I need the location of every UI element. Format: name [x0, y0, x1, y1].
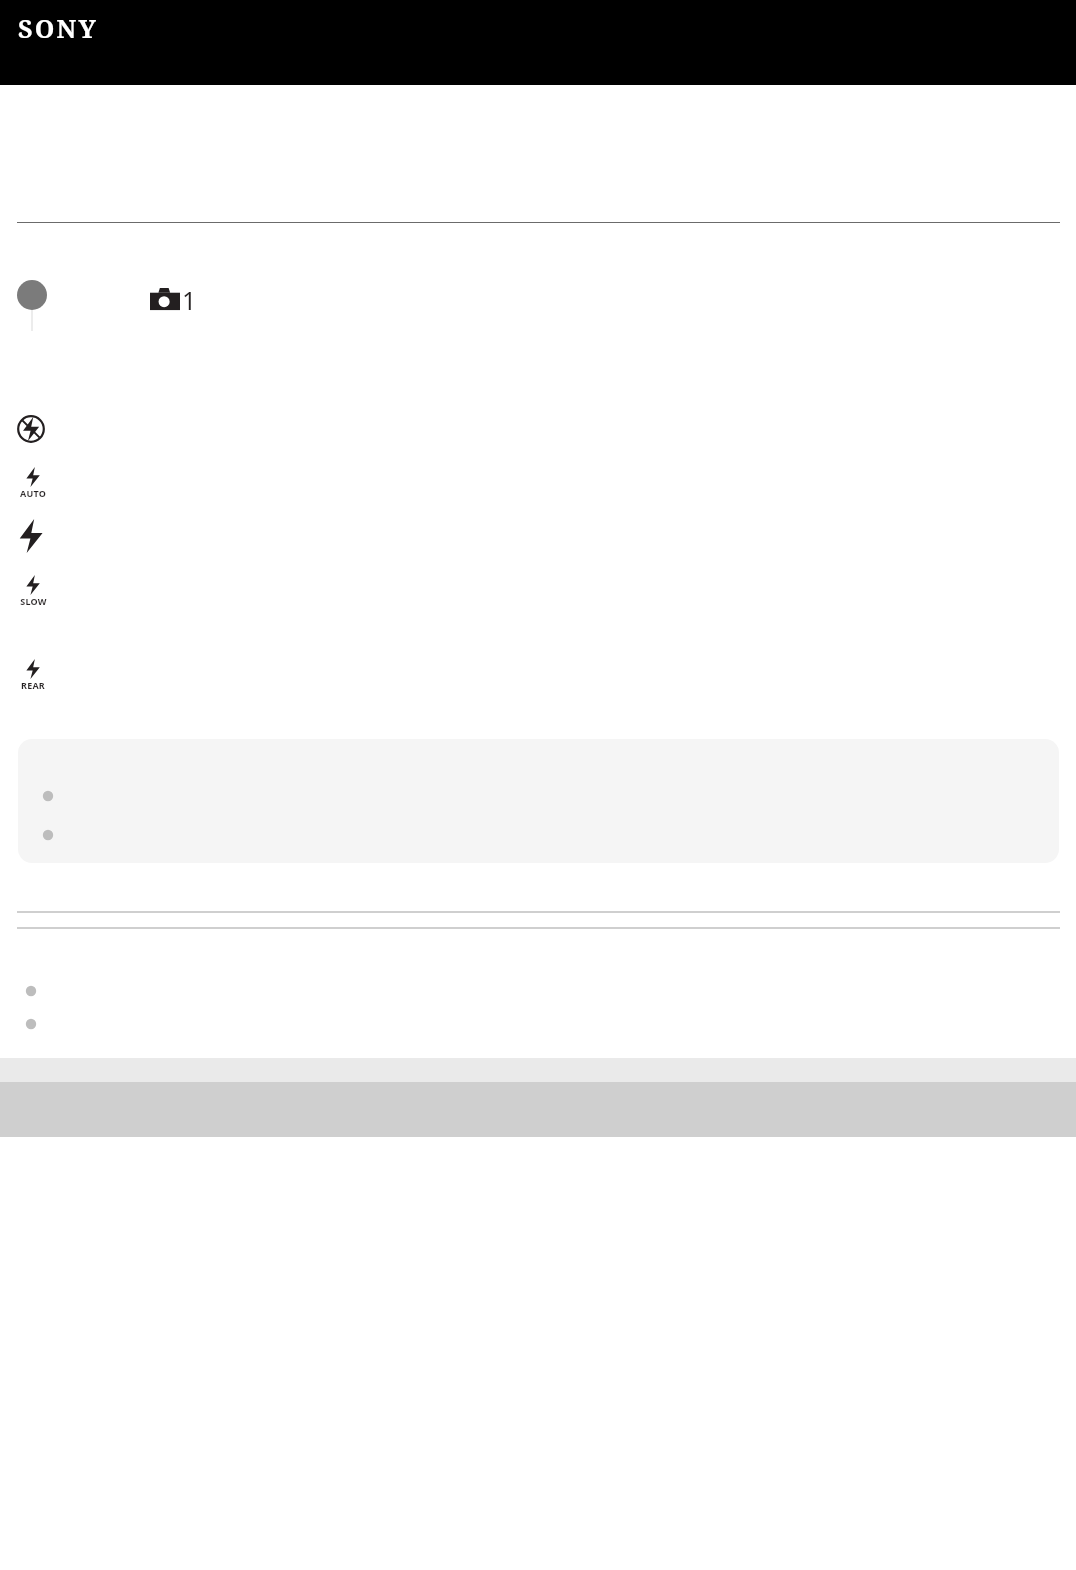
staticText: 1 [182, 283, 197, 317]
button[interactable]: SONY [14, 9, 102, 47]
staticText: REAR [21, 679, 45, 691]
staticText: SLOW [20, 595, 47, 607]
other: Camera [150, 286, 180, 314]
other: Flash off [16, 414, 46, 444]
button[interactable]: AUTO [16, 467, 1076, 499]
button[interactable]: SLOW [16, 575, 1076, 607]
staticText: AUTO [20, 487, 46, 499]
button[interactable]: REAR [16, 659, 1076, 691]
other: Flash on [16, 519, 46, 553]
staticText: SONY [18, 11, 98, 45]
button[interactable]: Flash off [16, 414, 1076, 444]
other: AUTO [24, 467, 42, 487]
other: REAR [24, 659, 42, 679]
button[interactable]: Flash on [16, 519, 1076, 553]
button[interactable]: Camera [150, 283, 197, 317]
other: SLOW [24, 575, 42, 595]
